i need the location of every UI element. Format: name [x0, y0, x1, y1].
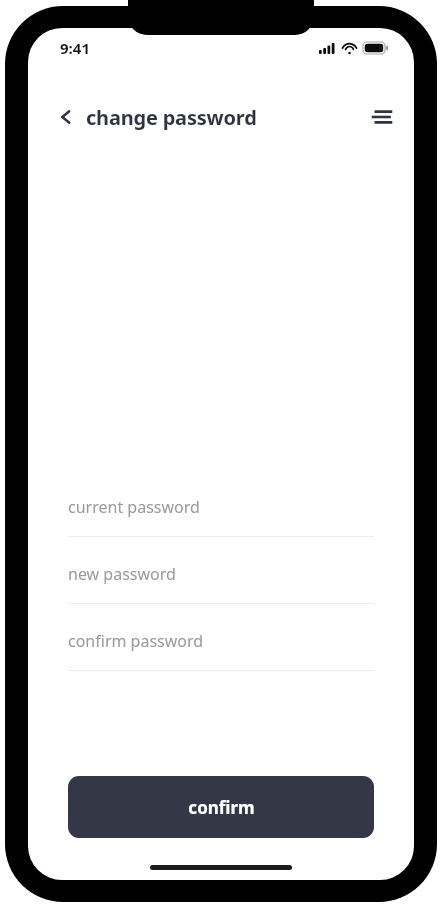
staticText: new password: [68, 563, 176, 585]
button[interactable]: Menu: [362, 97, 402, 137]
button[interactable]: Back: [48, 99, 84, 135]
button[interactable]: confirm password: [68, 630, 374, 671]
staticText: current password: [68, 496, 200, 518]
button[interactable]: current password: [68, 496, 374, 537]
staticText: confirm: [188, 796, 255, 819]
button[interactable]: confirm: [68, 776, 374, 838]
staticText: confirm password: [68, 630, 204, 652]
button[interactable]: new password: [68, 563, 374, 604]
staticText: change password: [86, 104, 257, 131]
staticText: 9:41: [60, 38, 90, 58]
